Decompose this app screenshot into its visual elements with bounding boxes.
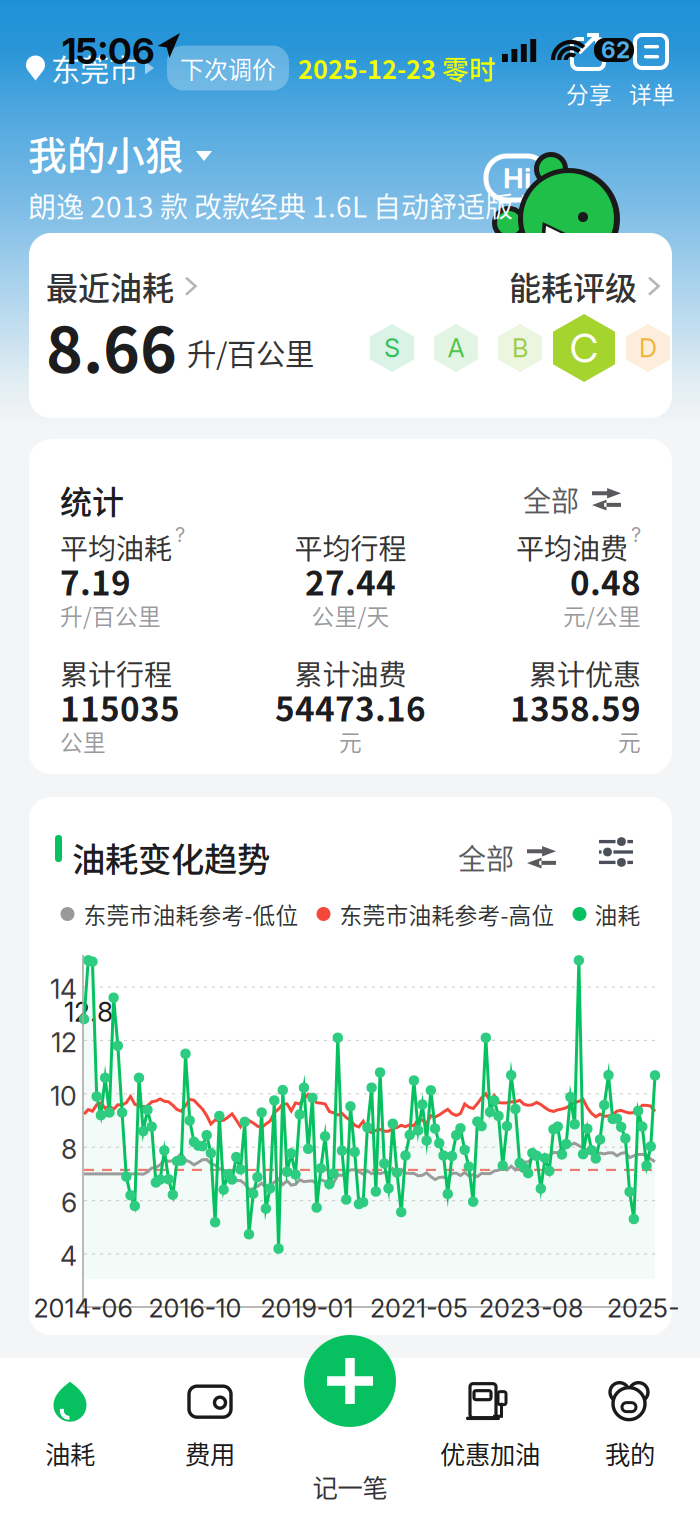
staticText: 油耗: [594, 898, 640, 930]
staticText: 统计: [60, 477, 124, 523]
staticText: 累计行程: [60, 653, 172, 693]
staticText: 累计油费: [294, 653, 406, 693]
staticText: Hi: [503, 161, 531, 195]
staticText: 元: [339, 725, 362, 757]
staticText: 油耗: [45, 1435, 95, 1471]
staticText: 8.66: [46, 300, 177, 391]
button[interactable]: 油耗: [6, 1374, 134, 1478]
staticText: 2014-06: [33, 1293, 132, 1324]
staticText: 我的小狼: [28, 125, 184, 181]
staticText: 油耗变化趋势: [72, 833, 270, 881]
staticText: 优惠加油: [440, 1435, 540, 1471]
staticText: 2025-12-23: [298, 50, 436, 86]
staticText: C: [569, 324, 598, 372]
button[interactable]: 能耗评级: [509, 263, 658, 309]
staticText: 12.8: [64, 996, 113, 1028]
staticText: D: [639, 333, 657, 363]
staticText: 最近油耗: [46, 263, 174, 309]
button[interactable]: 记一笔: [304, 1335, 396, 1427]
staticText: 东莞市油耗参考-高位: [339, 898, 554, 930]
staticText: 能耗评级: [509, 263, 637, 309]
staticText: 7.19: [60, 557, 131, 605]
staticText: 平均油耗: [60, 527, 172, 567]
button[interactable]: 我的: [566, 1374, 694, 1478]
staticText: 12: [51, 1026, 77, 1059]
staticText: 10: [50, 1080, 77, 1112]
staticText: 东莞市油耗参考-低位: [83, 898, 298, 930]
button[interactable]: 分享: [566, 35, 612, 110]
staticText: 平均油费: [516, 527, 628, 567]
staticText: 2019-01: [260, 1293, 353, 1324]
staticText: 15:06: [62, 29, 155, 73]
staticText: ?: [631, 523, 641, 547]
button[interactable]: 费用: [146, 1374, 274, 1478]
staticText: 全部: [523, 479, 579, 519]
staticText: 2021-05: [370, 1293, 468, 1324]
staticText: 27.44: [305, 557, 396, 605]
staticText: A: [447, 333, 464, 363]
button[interactable]: 详单: [629, 35, 675, 110]
staticText: 公里/天: [311, 599, 389, 631]
button[interactable]: 图表设置: [591, 831, 641, 873]
button[interactable]: 全部: [458, 837, 556, 877]
staticText: 54473.16: [275, 683, 426, 731]
staticText: 62: [601, 36, 630, 64]
staticText: 升/百公里: [60, 599, 161, 631]
staticText: 8: [61, 1133, 77, 1165]
staticText: 公里: [60, 725, 106, 757]
staticText: 6: [61, 1187, 77, 1219]
staticText: 4: [60, 1240, 77, 1272]
staticText: 0.48: [570, 557, 641, 605]
button[interactable]: 我的小狼: [28, 125, 212, 181]
staticText: 升/百公里: [187, 331, 314, 373]
staticText: 2016-10: [148, 1293, 241, 1324]
button[interactable]: 全部: [523, 479, 621, 519]
button[interactable]: 最近油耗: [46, 263, 195, 309]
staticText: 累计优惠: [529, 653, 641, 693]
staticText: ?: [175, 523, 185, 547]
staticText: S: [384, 333, 400, 363]
staticText: 全部: [458, 837, 514, 877]
staticText: 1358.59: [510, 683, 641, 731]
staticText: 东莞市: [51, 47, 138, 89]
staticText: 2023-08: [479, 1293, 583, 1324]
staticText: 115035: [60, 683, 180, 731]
staticText: 下次调价: [180, 51, 276, 85]
staticText: 我的: [605, 1435, 655, 1471]
staticText: B: [512, 333, 528, 363]
staticText: 2025-: [607, 1293, 679, 1324]
staticText: 费用: [185, 1435, 235, 1471]
staticText: 朗逸 2013 款 改款经典 1.6L 自动舒适版: [28, 185, 513, 225]
button[interactable]: 优惠加油: [426, 1374, 554, 1478]
button[interactable]: 下次调价: [167, 46, 289, 90]
staticText: 元/公里: [563, 599, 641, 631]
staticText: 零时: [442, 49, 496, 87]
staticText: 14: [50, 973, 77, 1005]
staticText: 分享: [566, 77, 612, 110]
staticText: 平均行程: [294, 527, 406, 567]
staticText: 记一笔: [312, 1468, 387, 1505]
staticText: 详单: [629, 77, 675, 110]
staticText: 元: [618, 725, 641, 757]
